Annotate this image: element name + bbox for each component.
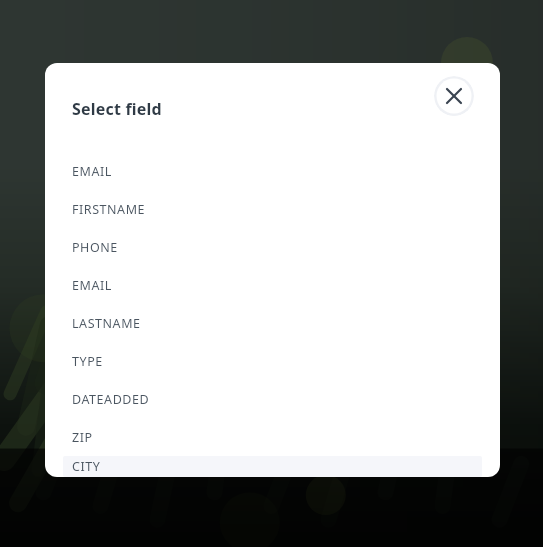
- staticText: EMAIL: [72, 277, 112, 294]
- button[interactable]: ZIP: [63, 418, 482, 456]
- button[interactable]: Close: [434, 76, 474, 116]
- staticText: EMAIL: [72, 163, 112, 180]
- button[interactable]: LASTNAME: [63, 304, 482, 342]
- button[interactable]: FIRSTNAME: [63, 190, 482, 228]
- button[interactable]: PHONE: [63, 228, 482, 266]
- button[interactable]: EMAIL: [63, 266, 482, 304]
- staticText: Select field: [72, 98, 162, 120]
- button[interactable]: DATEADDED: [63, 380, 482, 418]
- staticText: DATEADDED: [72, 391, 150, 408]
- staticText: LASTNAME: [72, 315, 141, 332]
- staticText: CITY: [72, 458, 101, 475]
- button[interactable]: TYPE: [63, 342, 482, 380]
- staticText: TYPE: [72, 353, 103, 370]
- staticText: PHONE: [72, 239, 118, 256]
- button[interactable]: CITY: [63, 456, 482, 477]
- button[interactable]: EMAIL: [63, 152, 482, 190]
- staticText: ZIP: [72, 429, 93, 446]
- staticText: FIRSTNAME: [72, 201, 146, 218]
